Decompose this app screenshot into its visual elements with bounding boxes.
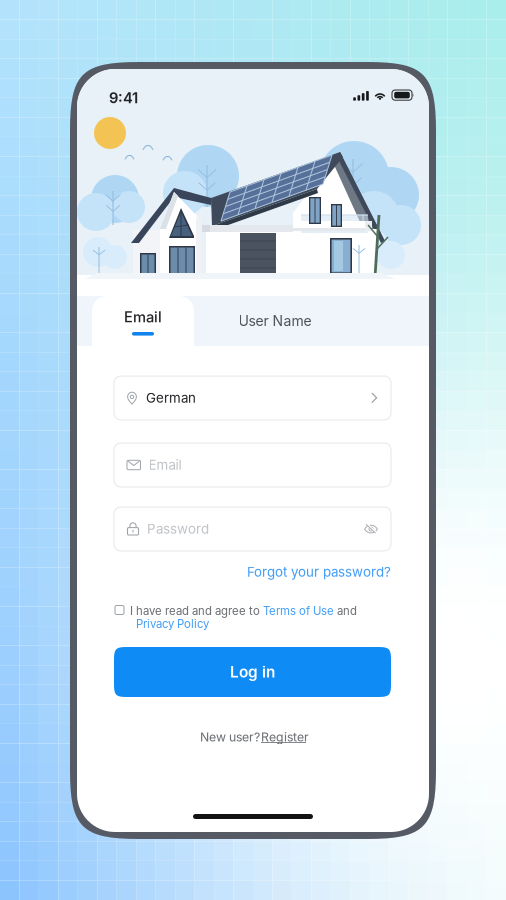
- staticText: New user?: [200, 730, 260, 744]
- staticText: Terms of Use: [263, 604, 334, 618]
- button[interactable]: German: [114, 376, 391, 420]
- button[interactable]: User Name: [220, 296, 330, 346]
- staticText: Forgot your password?: [247, 564, 391, 580]
- staticText: Email: [124, 308, 162, 326]
- button[interactable]: Privacy Policy: [136, 617, 209, 631]
- staticText: Privacy Policy: [136, 617, 209, 631]
- staticText: and: [334, 604, 357, 618]
- button[interactable]: Show password: [364, 523, 378, 534]
- button[interactable]: Email: [92, 296, 194, 346]
- staticText: User Name: [238, 312, 311, 329]
- staticText: 9:41: [109, 89, 138, 107]
- staticText: I have read and agree to: [130, 604, 263, 618]
- staticText: Register: [261, 730, 309, 744]
- staticText: Log in: [230, 663, 275, 681]
- staticText: Password: [147, 521, 209, 537]
- button[interactable]: Agree to terms and privacy policy: [112, 603, 126, 617]
- button[interactable]: Log in: [114, 647, 391, 697]
- button[interactable]: Forgot your password?: [231, 564, 391, 580]
- button[interactable]: Terms of Use: [263, 604, 334, 618]
- staticText: German: [146, 390, 196, 406]
- staticText: Email: [148, 457, 181, 473]
- button[interactable]: Register: [261, 729, 313, 747]
